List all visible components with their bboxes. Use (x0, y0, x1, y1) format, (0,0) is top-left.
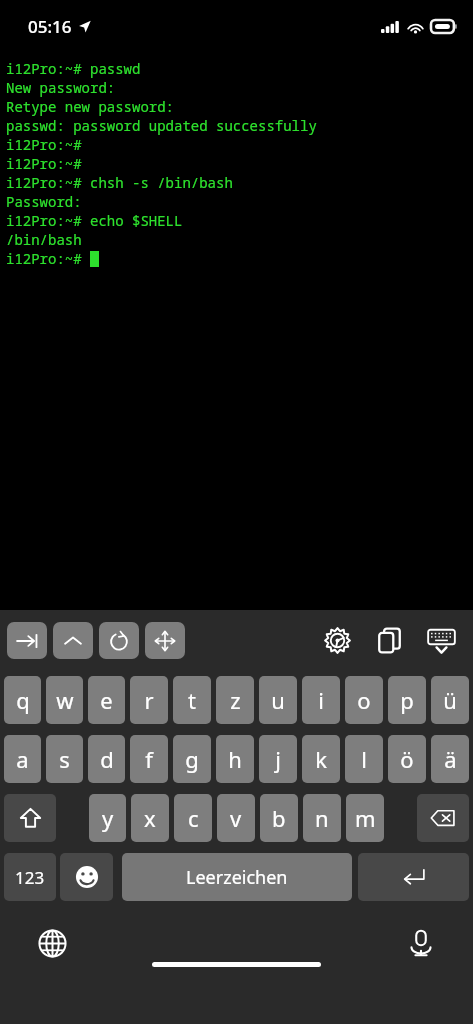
staticText: r (144, 685, 154, 715)
button[interactable]: Settings (317, 620, 357, 660)
button[interactable]: k (302, 735, 340, 783)
staticText: v (230, 803, 242, 833)
staticText: i12Pro:~# echo $SHELL (6, 211, 183, 230)
button[interactable]: f (130, 735, 168, 783)
button[interactable]: e (88, 676, 125, 724)
button[interactable]: History (99, 622, 139, 659)
staticText: u (271, 685, 285, 715)
staticText: d (100, 744, 114, 774)
staticText: Password: (6, 192, 82, 211)
button[interactable]: i12Pro:~# passwd (0, 52, 473, 610)
staticText: p (400, 685, 414, 715)
staticText: h (228, 744, 242, 774)
staticText: i12Pro:~# chsh -s /bin/bash (6, 173, 233, 192)
staticText: 123 (15, 866, 45, 889)
staticText: ü (443, 685, 457, 715)
button[interactable]: q (4, 676, 41, 724)
staticText: /bin/bash (6, 230, 82, 249)
button[interactable]: p (388, 676, 426, 724)
staticText: z (230, 685, 241, 715)
staticText: e (100, 685, 113, 715)
button[interactable]: u (259, 676, 297, 724)
staticText: ö (400, 744, 414, 774)
button[interactable]: Tabs (369, 620, 409, 660)
staticText: Leerzeichen (186, 865, 288, 890)
staticText: i12Pro:~# passwd (6, 59, 141, 78)
button[interactable]: Change keyboard (30, 921, 74, 965)
staticText: i12Pro:~# (6, 135, 82, 154)
staticText: b (272, 803, 286, 833)
staticText: m (355, 803, 376, 833)
staticText: i12Pro:~# (6, 154, 82, 173)
staticText: a (16, 744, 29, 774)
staticText: s (59, 744, 70, 774)
button[interactable]: h (216, 735, 254, 783)
button[interactable]: c (174, 794, 212, 842)
button[interactable]: j (259, 735, 297, 783)
staticText: j (275, 744, 281, 774)
staticText: l (361, 744, 367, 774)
button[interactable]: Dictation (399, 921, 443, 965)
button[interactable]: Control (53, 622, 93, 659)
staticText: c (188, 803, 199, 833)
button[interactable]: n (303, 794, 341, 842)
staticText: q (16, 685, 30, 715)
button[interactable]: y (89, 794, 126, 842)
button[interactable]: o (345, 676, 383, 724)
button[interactable]: ü (431, 676, 469, 724)
button[interactable]: Hide keyboard (421, 620, 461, 660)
button[interactable]: z (216, 676, 254, 724)
button[interactable]: i (302, 676, 340, 724)
button[interactable]: 123 (4, 853, 56, 901)
button[interactable]: x (131, 794, 169, 842)
button[interactable]: v (217, 794, 255, 842)
button[interactable]: ö (388, 735, 426, 783)
staticText: i (318, 685, 324, 715)
staticText: g (185, 744, 199, 774)
button[interactable]: l (345, 735, 383, 783)
staticText: i12Pro:~# (6, 249, 90, 268)
button[interactable]: d (88, 735, 125, 783)
staticText: 05:16 (28, 15, 72, 38)
button[interactable]: g (173, 735, 211, 783)
button[interactable]: Shift (4, 794, 56, 842)
button[interactable]: Return (358, 853, 469, 901)
staticText: n (315, 803, 329, 833)
staticText: w (56, 685, 74, 715)
button[interactable]: Leerzeichen (122, 853, 352, 901)
staticText: passwd: password updated successfully (6, 116, 317, 135)
button[interactable]: a (4, 735, 41, 783)
staticText: ä (444, 744, 457, 774)
button[interactable]: m (346, 794, 384, 842)
button[interactable]: w (46, 676, 83, 724)
button[interactable]: t (173, 676, 211, 724)
button[interactable]: r (130, 676, 168, 724)
button[interactable]: s (46, 735, 83, 783)
staticText: o (357, 685, 371, 715)
staticText: k (315, 744, 327, 774)
staticText: y (102, 803, 114, 833)
staticText: x (144, 803, 156, 833)
button[interactable]: b (260, 794, 298, 842)
button[interactable]: Tab (7, 622, 47, 659)
staticText: Retype new password: (6, 97, 174, 116)
staticText: f (145, 744, 153, 774)
staticText: t (188, 685, 196, 715)
button[interactable]: Backspace (417, 794, 469, 842)
button[interactable]: Arrow keys (145, 622, 185, 659)
staticText: New password: (6, 78, 116, 97)
button[interactable]: ä (431, 735, 469, 783)
button[interactable]: Emoji (60, 853, 113, 901)
